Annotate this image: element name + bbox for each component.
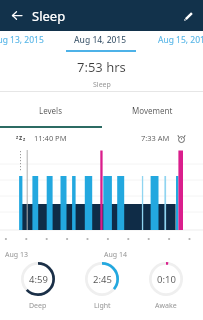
staticText: Sleep <box>93 80 111 90</box>
staticText: z <box>19 133 23 142</box>
button[interactable]: 2:45 <box>70 262 134 311</box>
button[interactable]: Aug 15, 2015 <box>141 31 203 52</box>
staticText: Aug 15, 2015 <box>158 34 203 46</box>
button[interactable]: Aug 13, 2015 <box>0 31 60 52</box>
staticText: z <box>16 134 19 140</box>
staticText: Light <box>94 301 111 311</box>
staticText: Aug 14 <box>104 250 127 260</box>
button[interactable]: Edit <box>180 8 196 24</box>
staticText: 2:45 <box>93 273 112 286</box>
staticText: Aug 13, 2015 <box>0 34 44 46</box>
staticText: 7:53 hrs <box>77 58 126 76</box>
staticText: 11:40 PM <box>34 133 67 143</box>
staticText: Movement <box>132 105 173 116</box>
button[interactable]: Aug 14, 2015 <box>58 31 143 52</box>
staticText: 7:33 AM <box>141 133 170 143</box>
button[interactable]: 0:10 <box>134 262 198 311</box>
button[interactable]: 4:59 <box>5 262 70 311</box>
button[interactable]: Levels <box>0 92 101 128</box>
staticText: Deep <box>29 301 47 311</box>
staticText: Sleep <box>32 7 66 25</box>
button[interactable]: Back <box>8 7 25 24</box>
staticText: Aug 13 <box>5 250 28 260</box>
staticText: z <box>23 136 26 142</box>
staticText: Awake <box>155 301 177 311</box>
button[interactable]: Movement <box>101 92 203 128</box>
staticText: Aug 14, 2015 <box>74 34 127 46</box>
staticText: 0:10 <box>157 273 176 286</box>
staticText: Levels <box>39 105 63 116</box>
staticText: 4:59 <box>29 273 48 286</box>
